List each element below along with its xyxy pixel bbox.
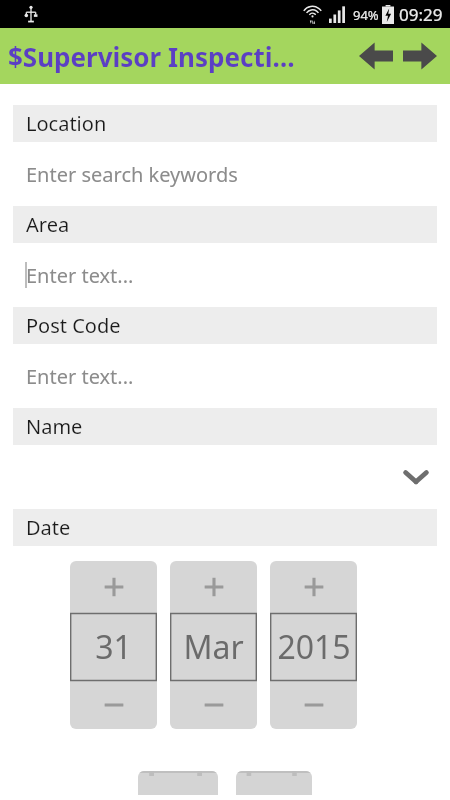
button[interactable]: Select name: [13, 445, 437, 509]
staticText: Area: [26, 211, 70, 238]
button[interactable]: Location: [13, 105, 437, 142]
staticText: Post Code: [26, 312, 121, 339]
staticText: Name: [26, 413, 83, 440]
button[interactable]: Next: [398, 34, 442, 78]
button[interactable]: Increase Mar: [170, 561, 257, 613]
button[interactable]: [138, 771, 218, 795]
button[interactable]: [236, 771, 312, 795]
button[interactable]: Decrease Mar: [170, 681, 257, 729]
button[interactable]: Name: [13, 408, 437, 445]
button[interactable]: 2015: [270, 613, 357, 681]
button[interactable]: Enter search keywords: [13, 142, 437, 206]
button[interactable]: Previous: [354, 34, 398, 78]
button[interactable]: Area: [13, 206, 437, 243]
staticText: Enter search keywords: [26, 161, 238, 188]
staticText: Enter text...: [26, 363, 134, 390]
staticText: Enter text...: [26, 262, 134, 289]
button[interactable]: Enter text...: [13, 243, 437, 307]
staticText: 09:29: [399, 3, 443, 26]
staticText: 2015: [277, 625, 351, 669]
button[interactable]: Date: [13, 509, 437, 546]
button[interactable]: Increase 2015: [270, 561, 357, 613]
button[interactable]: 31: [70, 613, 157, 681]
button[interactable]: Enter text...: [13, 344, 437, 408]
staticText: 94%: [353, 6, 379, 24]
staticText: 31: [95, 625, 132, 669]
button[interactable]: Decrease 2015: [270, 681, 357, 729]
button[interactable]: Decrease 31: [70, 681, 157, 729]
button[interactable]: Post Code: [13, 307, 437, 344]
staticText: Mar: [183, 625, 244, 669]
staticText: $Supervisor Inspecti…: [8, 39, 295, 74]
button[interactable]: Increase 31: [70, 561, 157, 613]
button[interactable]: Mar: [170, 613, 257, 681]
staticText: Date: [26, 514, 71, 541]
staticText: Location: [26, 110, 107, 137]
